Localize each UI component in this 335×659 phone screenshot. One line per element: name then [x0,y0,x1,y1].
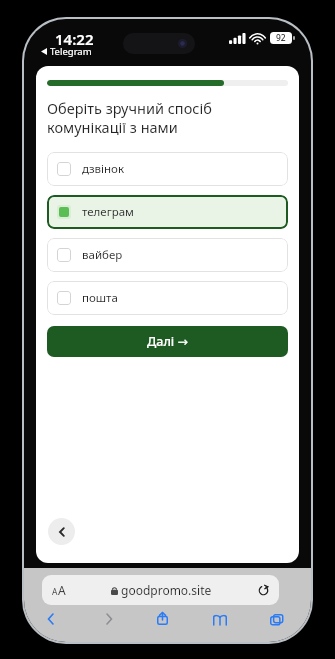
button[interactable]: вайбер [47,238,288,272]
staticText: 14:22 [55,29,94,49]
other: Reload [258,585,269,596]
button[interactable]: Bookmarks [213,615,227,625]
staticText: A [52,586,58,598]
button[interactable]: телеграм [47,195,288,229]
button[interactable]: Далі → [47,326,288,357]
button[interactable]: Tabs [270,614,283,625]
staticText: пошта [82,290,118,306]
staticText: A [58,582,66,598]
staticText: Telegram [50,45,92,58]
button[interactable]: Share [157,612,168,625]
staticText: Оберіть зручний спосіб комунікації з нам… [47,98,212,137]
staticText: телеграм [82,204,134,220]
button[interactable]: Forward [104,614,114,624]
button[interactable]: дзвінок [47,152,288,186]
button[interactable]: пошта [47,281,288,315]
staticText: вайбер [82,247,123,263]
button[interactable]: Back [46,614,56,624]
button[interactable]: Back [48,518,75,545]
staticText: Далі → [147,333,188,350]
button[interactable]: A [42,575,279,605]
staticText: goodpromo.site [121,582,212,598]
staticText: дзвінок [82,161,125,177]
staticText: 92 [276,32,286,44]
